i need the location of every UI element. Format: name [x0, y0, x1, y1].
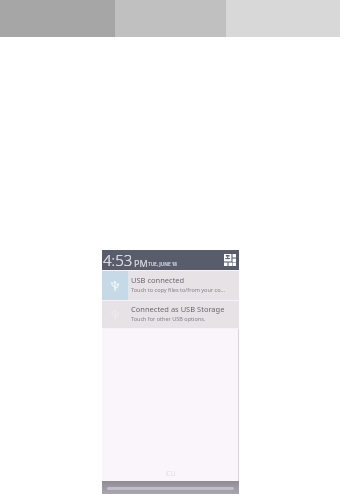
button[interactable]: USB connected	[102, 271, 239, 300]
staticText: 4:53	[103, 250, 133, 270]
staticText: USB connected	[131, 275, 185, 285]
staticText: Connected as USB Storage	[131, 304, 225, 314]
staticText: Touch for other USB options.	[131, 315, 206, 322]
button[interactable]: Drag handle	[102, 481, 239, 494]
staticText: Touch to copy files to/from your co...	[131, 286, 225, 293]
staticText: CU	[166, 469, 176, 479]
staticText: TUE, JUNE 18	[148, 261, 177, 267]
button[interactable]: Quick settings	[221, 253, 236, 268]
button[interactable]: Connected as USB Storage	[102, 301, 239, 328]
staticText: PM	[134, 257, 148, 269]
